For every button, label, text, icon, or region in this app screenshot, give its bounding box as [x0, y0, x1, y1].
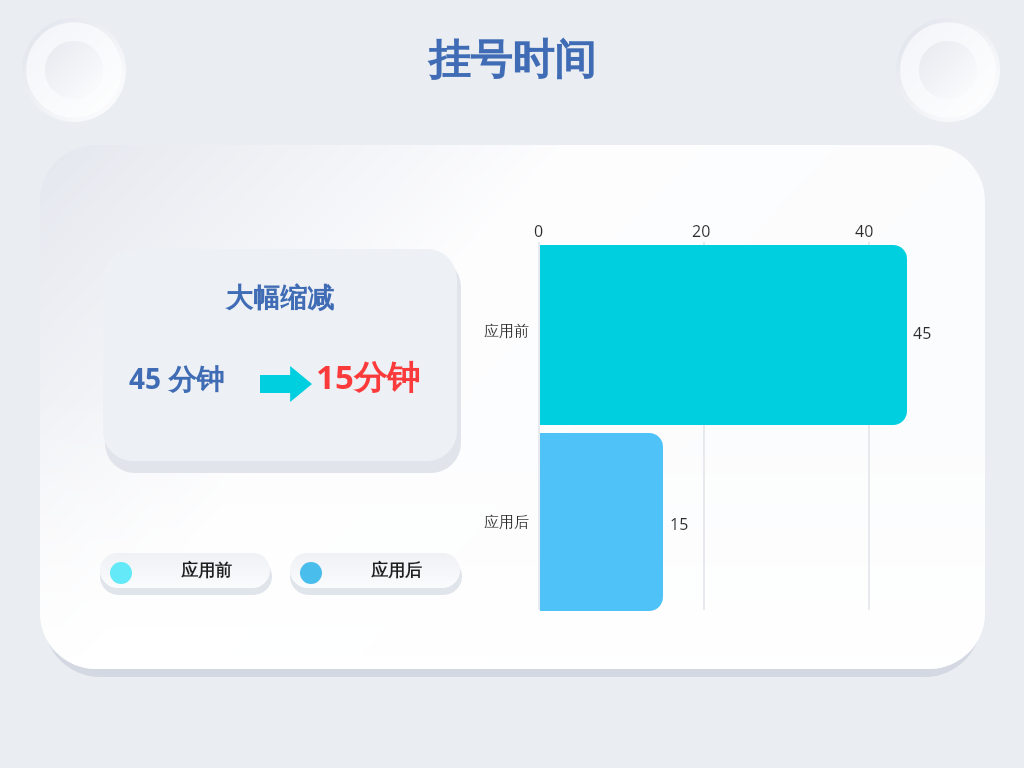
staticText: 45 分钟	[129, 359, 225, 397]
button[interactable]: 应用后	[290, 553, 462, 593]
staticText: 挂号时间	[428, 34, 596, 87]
button[interactable]	[540, 245, 907, 425]
staticText: 应用前	[484, 322, 529, 341]
staticText: 应用后	[484, 513, 529, 532]
staticText: 20	[692, 220, 711, 242]
staticText: 应用前	[181, 560, 232, 581]
staticText: 15	[670, 513, 689, 535]
staticText: 40	[855, 220, 874, 242]
button[interactable]: 应用前	[100, 553, 272, 593]
staticText: 大幅缩减	[226, 281, 334, 315]
staticText: 应用后	[371, 560, 422, 581]
staticText: 45	[913, 322, 932, 344]
button[interactable]	[540, 433, 663, 611]
staticText: 15分钟	[316, 354, 420, 399]
staticText: 0	[534, 220, 544, 242]
